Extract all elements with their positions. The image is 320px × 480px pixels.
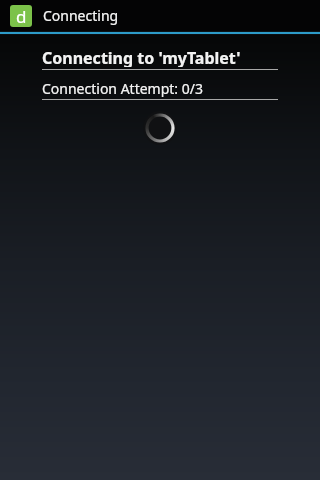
staticText: Connecting to 'myTablet' <box>42 47 241 67</box>
button[interactable]: d <box>0 0 320 31</box>
staticText: d <box>16 5 27 27</box>
staticText: Connection Attempt: 0/3 <box>42 79 203 97</box>
staticText: Connecting <box>43 6 119 25</box>
